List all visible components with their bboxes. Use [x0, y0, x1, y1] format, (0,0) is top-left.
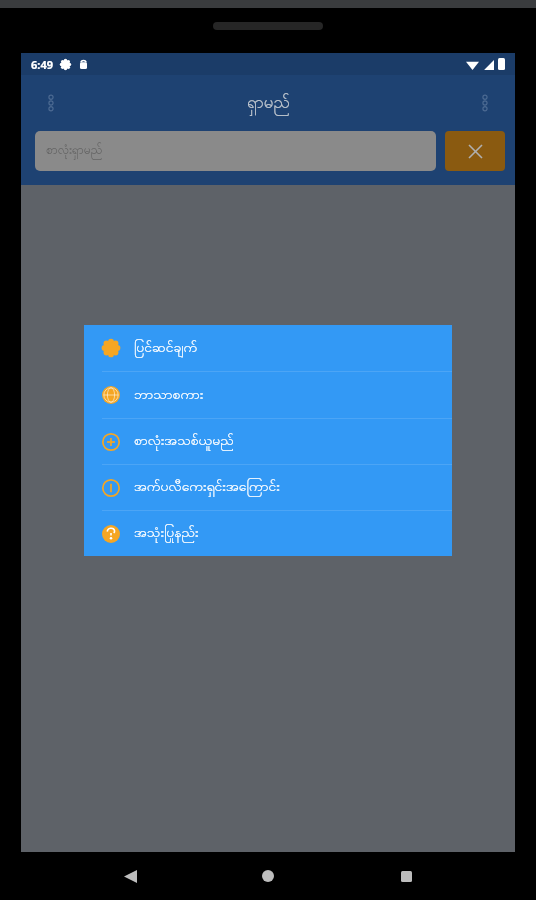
staticText: ရှာမည်	[247, 91, 290, 116]
button[interactable]: အက်ပလီကေးရှင်းအကြောင်း	[84, 465, 452, 510]
staticText: ပြင်ဆင်ချက်	[134, 338, 198, 359]
staticText: စာလုံးရှာမည်	[46, 142, 103, 160]
button[interactable]: More options	[465, 83, 505, 123]
staticText: စာလုံးအသစ်ယူမည်	[134, 431, 234, 452]
staticText: 6:49	[31, 57, 53, 72]
button[interactable]: Clear	[445, 131, 505, 171]
button[interactable]: Recents	[386, 856, 426, 896]
staticText: အသုံးပြုနည်း	[134, 523, 199, 544]
button[interactable]: စာလုံးရှာမည်	[35, 131, 436, 171]
button[interactable]: Menu	[31, 83, 71, 123]
staticText: ဘာသာစကား	[134, 385, 204, 406]
button[interactable]: ပြင်ဆင်ချက်	[84, 325, 452, 371]
button[interactable]: ဘာသာစကား	[84, 372, 452, 418]
button[interactable]: အသုံးပြုနည်း	[84, 511, 452, 556]
staticText: အက်ပလီကေးရှင်းအကြောင်း	[134, 477, 280, 498]
button[interactable]: Back	[110, 856, 150, 896]
button[interactable]: Home	[248, 856, 288, 896]
button[interactable]: စာလုံးအသစ်ယူမည်	[84, 419, 452, 464]
